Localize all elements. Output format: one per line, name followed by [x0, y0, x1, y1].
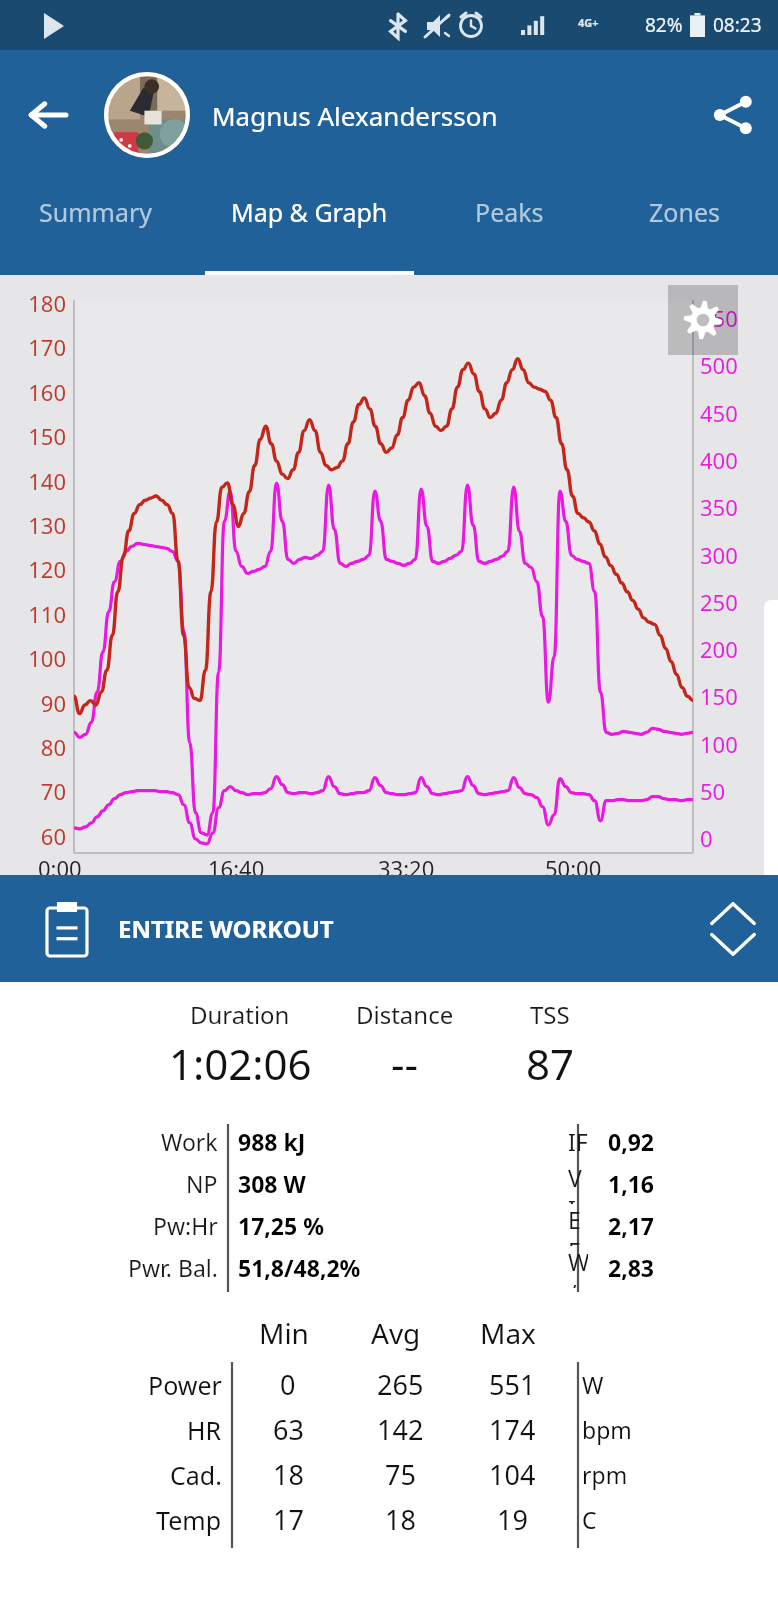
staticText: 300 — [700, 540, 758, 570]
staticText: 2,17 — [608, 1210, 655, 1241]
staticText: 4G+ — [578, 15, 599, 30]
staticText: 550 — [700, 303, 758, 333]
staticText: 80 — [14, 732, 66, 762]
staticText: 100 — [14, 643, 66, 673]
staticText: 142 — [377, 1411, 424, 1448]
button[interactable]: Summary — [0, 180, 191, 275]
staticText: TSS — [530, 998, 570, 1031]
staticText: Pwr. Bal. — [128, 1252, 218, 1283]
staticText: bpm — [582, 1414, 632, 1445]
staticText: 16:40 — [208, 853, 265, 883]
staticText: 140 — [14, 466, 66, 496]
staticText: 104 — [489, 1456, 536, 1493]
staticText: 18 — [385, 1501, 416, 1538]
staticText: 0 — [700, 823, 758, 853]
staticText: 60 — [14, 821, 66, 851]
staticText: Summary — [39, 195, 153, 229]
staticText: -- — [391, 1035, 419, 1092]
button[interactable]: Share — [688, 70, 778, 160]
staticText: Duration — [190, 998, 290, 1031]
staticText: NP — [186, 1168, 218, 1199]
staticText: 350 — [700, 492, 758, 522]
staticText: 174 — [489, 1411, 536, 1448]
staticText: Magnus Alexandersson — [212, 98, 688, 133]
staticText: 170 — [14, 332, 66, 362]
staticText: 0 — [280, 1366, 296, 1403]
staticText: ENTIRE WORKOUT — [118, 912, 688, 945]
staticText: 120 — [14, 554, 66, 584]
staticText: Distance — [356, 998, 454, 1031]
staticText: Peaks — [475, 195, 544, 229]
staticText: 988 kJ — [238, 1126, 306, 1157]
staticText: 500 — [700, 350, 758, 380]
staticText: HR — [187, 1413, 222, 1447]
staticText: 63 — [273, 1411, 304, 1448]
staticText: Power — [148, 1368, 222, 1402]
staticText: EF — [568, 1204, 588, 1246]
staticText: 130 — [14, 510, 66, 540]
staticText: Pw:Hr — [153, 1210, 218, 1241]
staticText: 90 — [14, 688, 66, 718]
staticText: 50 — [700, 776, 758, 806]
button[interactable]: Chart settings — [668, 285, 738, 355]
button[interactable]: Back — [0, 67, 96, 163]
staticText: 87 — [526, 1035, 575, 1092]
staticText: 308 W — [238, 1168, 306, 1199]
button[interactable]: ENTIRE WORKOUT — [0, 875, 778, 982]
staticText: W — [582, 1369, 604, 1400]
staticText: 17,25 % — [238, 1210, 324, 1241]
staticText: 450 — [700, 398, 758, 428]
staticText: Temp — [156, 1503, 222, 1537]
staticText: 400 — [700, 445, 758, 475]
staticText: 33:20 — [378, 853, 435, 883]
staticText: 200 — [700, 634, 758, 664]
staticText: 50:00 — [545, 853, 602, 883]
staticText: 110 — [14, 599, 66, 629]
staticText: 551 — [489, 1366, 536, 1403]
staticText: Cad. — [170, 1458, 222, 1492]
staticText: Zones — [649, 195, 720, 229]
staticText: 18 — [273, 1456, 304, 1493]
staticText: W/kg — [568, 1246, 588, 1288]
staticText: 180 — [14, 288, 66, 318]
staticText: 19 — [497, 1501, 528, 1538]
button[interactable]: Map & Graph — [191, 180, 428, 275]
staticText: 2,83 — [608, 1252, 655, 1283]
staticText: 17 — [273, 1501, 304, 1538]
button[interactable]: Peaks — [428, 180, 591, 275]
staticText: Min — [259, 1314, 309, 1352]
staticText: IF — [568, 1126, 588, 1157]
staticText: 0:00 — [38, 853, 82, 883]
button[interactable]: Expand workout selector — [688, 884, 778, 974]
staticText: C — [582, 1504, 597, 1535]
staticText: 70 — [14, 776, 66, 806]
staticText: 1,16 — [608, 1168, 655, 1199]
staticText: 150 — [700, 681, 758, 711]
button[interactable]: Zones — [591, 180, 778, 275]
button[interactable]: Profile photo — [104, 72, 190, 158]
staticText: 265 — [377, 1366, 424, 1403]
staticText: 0,92 — [608, 1126, 655, 1157]
staticText: 08:23 — [713, 12, 762, 38]
staticText: Avg — [371, 1314, 421, 1352]
staticText: 250 — [700, 587, 758, 617]
staticText: Map & Graph — [231, 195, 388, 229]
staticText: 1:02:06 — [169, 1035, 312, 1092]
staticText: Work — [161, 1126, 218, 1157]
staticText: 100 — [700, 729, 758, 759]
staticText: VI — [568, 1162, 588, 1204]
staticText: 150 — [14, 421, 66, 451]
staticText: 51,8/48,2% — [238, 1252, 361, 1283]
staticText: Max — [480, 1314, 536, 1352]
staticText: 75 — [385, 1456, 416, 1493]
staticText: rpm — [582, 1459, 628, 1490]
staticText: 82% — [645, 12, 683, 38]
staticText: 160 — [14, 377, 66, 407]
